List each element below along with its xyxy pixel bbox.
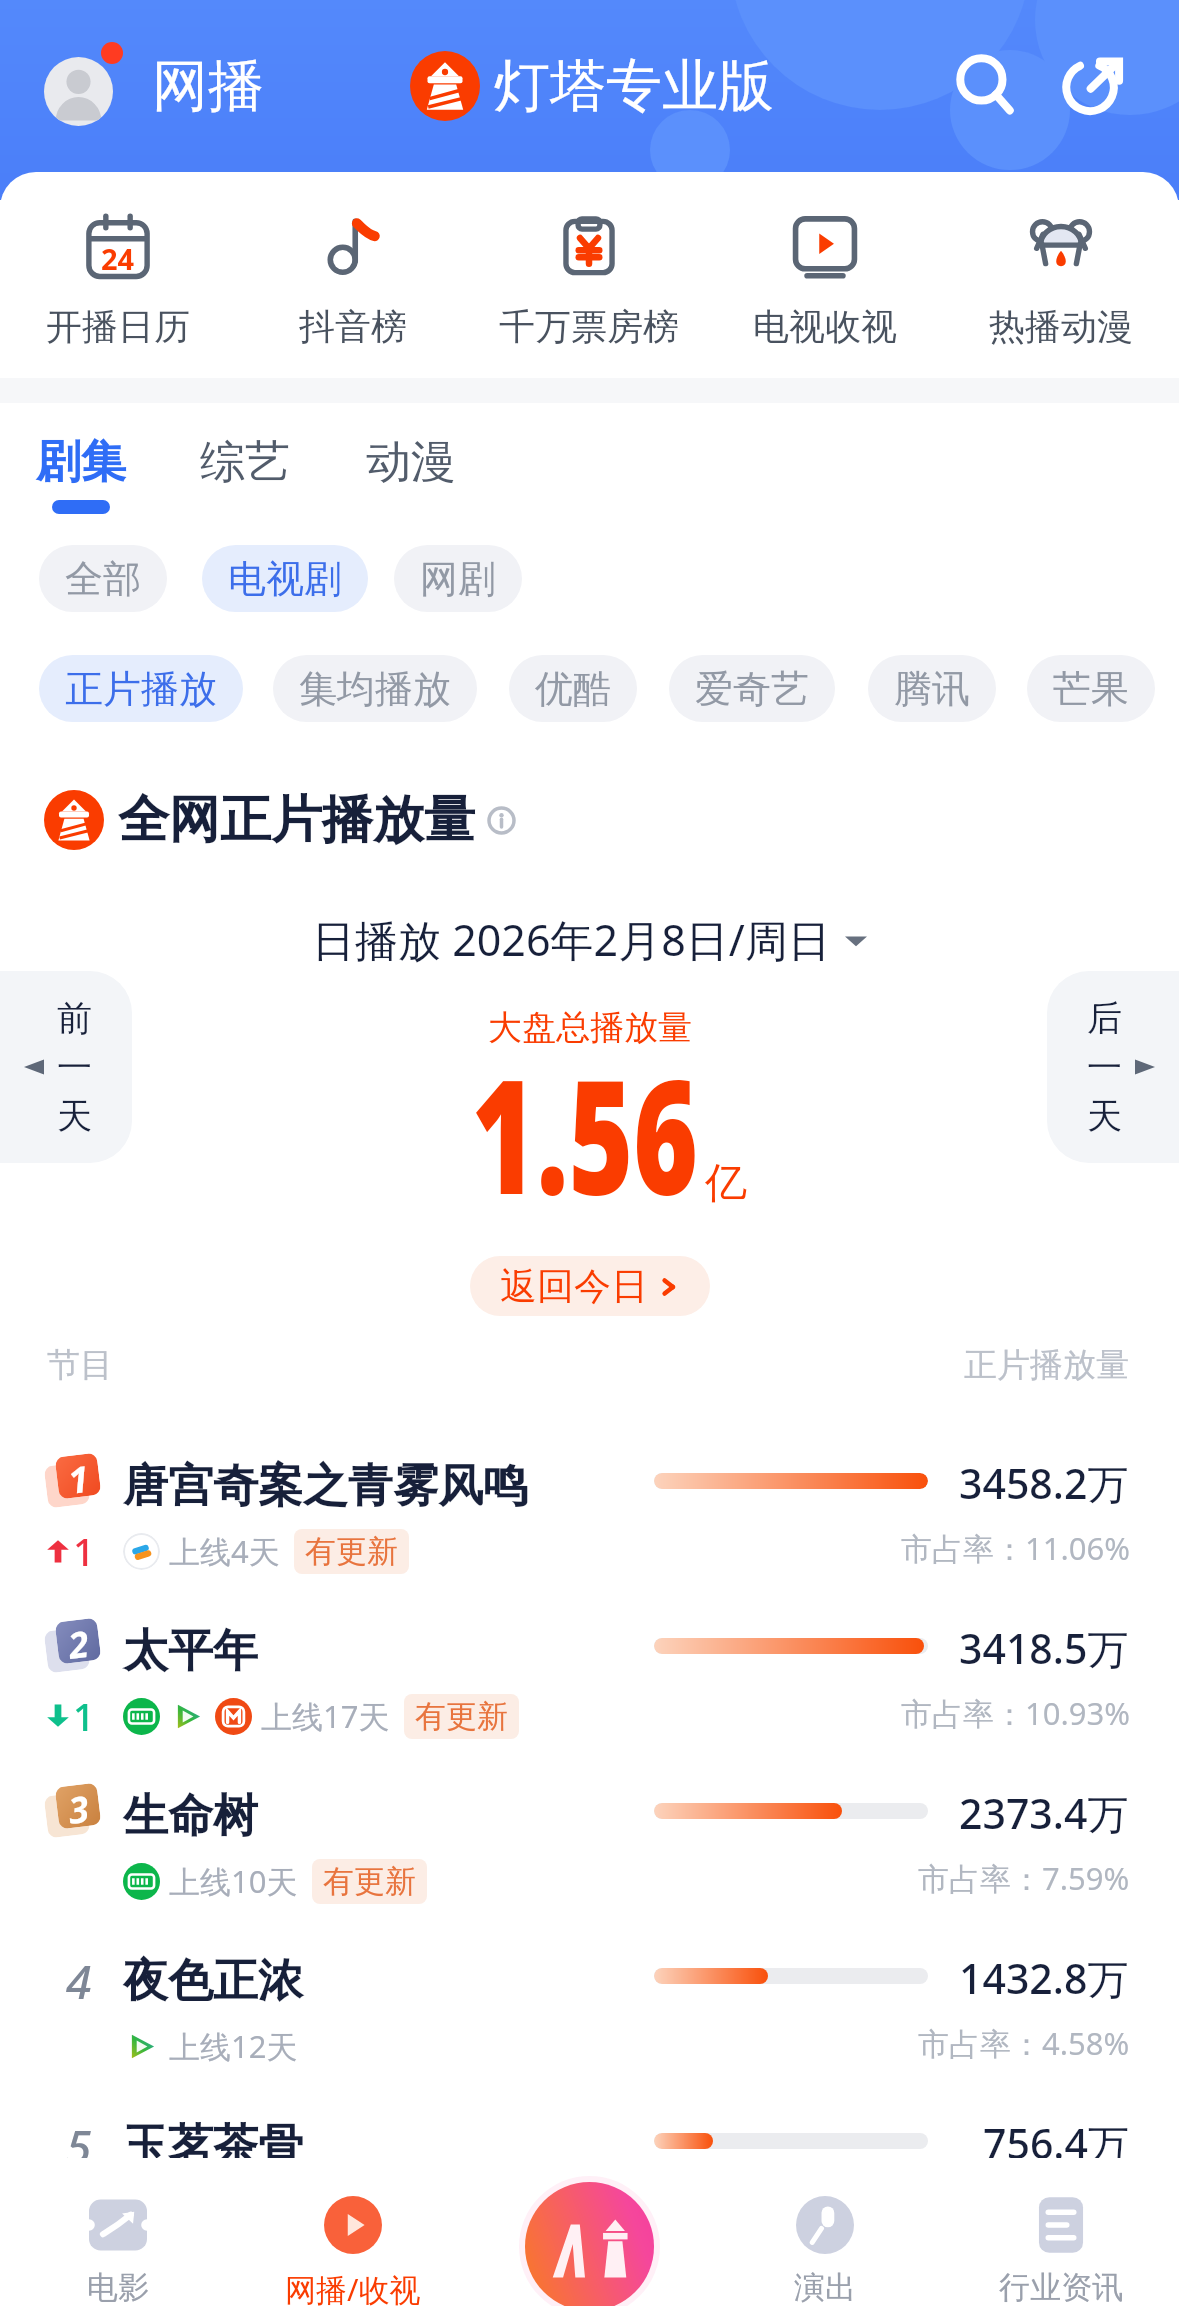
button[interactable]: 正片播放: [39, 655, 243, 722]
staticText: 芒果: [1053, 665, 1129, 713]
button[interactable]: 网剧: [394, 545, 522, 612]
staticText: 返回今日: [500, 1263, 648, 1310]
button[interactable]: 优酷: [509, 655, 637, 722]
button[interactable]: 电影: [0, 2158, 235, 2306]
button[interactable]: 综艺: [200, 434, 290, 514]
staticText: 网播/收视: [285, 2268, 421, 2306]
staticText: 5: [66, 2115, 92, 2178]
button[interactable]: 网播/收视: [235, 2158, 471, 2306]
staticText: 开播日历: [46, 304, 190, 349]
button[interactable]: 日播放 2026年2月8日/周日: [312, 910, 867, 969]
button[interactable]: 全网正片播放量: [44, 788, 516, 852]
staticText: 大盘总播放量: [488, 1006, 692, 1049]
staticText: 全网正片播放量: [118, 788, 475, 852]
staticText: 亿: [705, 1157, 747, 1210]
staticText: 优酷: [535, 665, 611, 713]
staticText: 市占率：4.58%: [918, 2022, 1130, 2064]
button[interactable]: 后: [1047, 971, 1179, 1163]
staticText: 天: [57, 1094, 92, 1138]
staticText: 天: [1087, 1094, 1122, 1138]
staticText: 市占率：11.06%: [901, 1527, 1130, 1569]
staticText: 有更新: [305, 1532, 398, 1571]
button[interactable]: 电视剧: [202, 545, 368, 612]
staticText: 上线17天: [261, 1695, 390, 1737]
button[interactable]: 热播动漫: [943, 172, 1179, 377]
staticText: 4: [66, 1950, 92, 2013]
staticText: 24: [101, 239, 135, 278]
button[interactable]: 抖音榜: [235, 172, 471, 377]
staticText: 3458.2万: [959, 1455, 1129, 1511]
button[interactable]: 灯塔专业版: [410, 0, 774, 172]
staticText: 上线10天: [169, 1860, 298, 1902]
button[interactable]: 3: [0, 1771, 1179, 1936]
button[interactable]: 5: [0, 2101, 1179, 2266]
staticText: 行业资讯: [999, 2268, 1123, 2306]
staticText: 演出: [794, 2268, 856, 2306]
staticText: 1432.8万: [959, 1950, 1129, 2006]
staticText: 3: [65, 1784, 90, 1828]
staticText: 千万票房榜: [499, 304, 679, 349]
staticText: 夜色正浓: [123, 1953, 303, 2010]
button[interactable]: 芒果: [1027, 655, 1155, 722]
button[interactable]: 1: [0, 1441, 1179, 1606]
staticText: 3418.5万: [959, 1620, 1129, 1676]
button[interactable]: 全部: [39, 545, 167, 612]
staticText: 动漫: [366, 434, 456, 491]
button[interactable]: 爱奇艺: [669, 655, 835, 722]
staticText: 电视剧: [228, 555, 342, 603]
button[interactable]: 网播: [44, 0, 264, 172]
staticText: 抖音榜: [299, 304, 407, 349]
staticText: 生命树: [123, 1788, 258, 1845]
staticText: 唐宫奇案之青雾风鸣: [123, 1458, 528, 1515]
staticText: 1.56: [472, 1025, 698, 1240]
button[interactable]: 动漫: [366, 434, 456, 514]
staticText: 集均播放: [299, 665, 451, 713]
staticText: 1: [65, 1454, 90, 1498]
button[interactable]: Share: [1051, 43, 1137, 129]
staticText: 有更新: [415, 1697, 508, 1736]
button[interactable]: 返回今日: [470, 1256, 710, 1316]
staticText: 全部: [65, 555, 141, 603]
staticText: 网剧: [420, 555, 496, 603]
button[interactable]: 行业资讯: [943, 2158, 1179, 2306]
staticText: 一: [57, 1045, 92, 1089]
staticText: 市占率：10.93%: [901, 1692, 1130, 1734]
staticText: 前: [57, 996, 92, 1040]
staticText: 剧集: [36, 434, 126, 491]
button[interactable]: 24: [0, 172, 235, 377]
staticText: 腾讯: [894, 665, 970, 713]
staticText: 上线12天: [169, 2025, 298, 2067]
staticText: 正片播放: [65, 665, 217, 713]
button[interactable]: 4: [0, 1936, 1179, 2101]
staticText: 电视收视: [753, 304, 897, 349]
staticText: 玉茗茶骨: [123, 2118, 303, 2175]
staticText: 2373.4万: [959, 1785, 1129, 1841]
staticText: 有更新: [323, 1862, 416, 1901]
staticText: 一: [1087, 1045, 1122, 1089]
staticText: 爱奇艺: [695, 665, 809, 713]
button[interactable]: 前: [0, 971, 132, 1163]
button[interactable]: Search: [943, 43, 1029, 129]
staticText: 756.4万: [983, 2115, 1129, 2171]
button[interactable]: 电视收视: [707, 172, 943, 377]
staticText: 太平年: [123, 1623, 258, 1680]
button[interactable]: 千万票房榜: [471, 172, 707, 377]
staticText: 灯塔专业版: [494, 51, 774, 122]
button[interactable]: 演出: [707, 2158, 943, 2306]
button[interactable]: 腾讯: [868, 655, 996, 722]
staticText: 综艺: [200, 434, 290, 491]
staticText: 日播放 2026年2月8日/周日: [312, 910, 831, 969]
button[interactable]: 集均播放: [273, 655, 477, 722]
staticText: 2: [65, 1619, 90, 1663]
staticText: 热播动漫: [989, 304, 1133, 349]
staticText: 正片播放量: [964, 1344, 1129, 1386]
button[interactable]: AI 助手: [525, 2182, 654, 2306]
staticText: 电影: [87, 2268, 149, 2306]
button[interactable]: 剧集: [36, 434, 126, 514]
staticText: 市占率：7.59%: [918, 1857, 1130, 1899]
staticText: 上线4天: [169, 1530, 280, 1572]
staticText: 节目: [47, 1344, 113, 1386]
staticText: 后: [1087, 996, 1122, 1040]
staticText: 网播: [152, 51, 264, 122]
button[interactable]: 2: [0, 1606, 1179, 1771]
